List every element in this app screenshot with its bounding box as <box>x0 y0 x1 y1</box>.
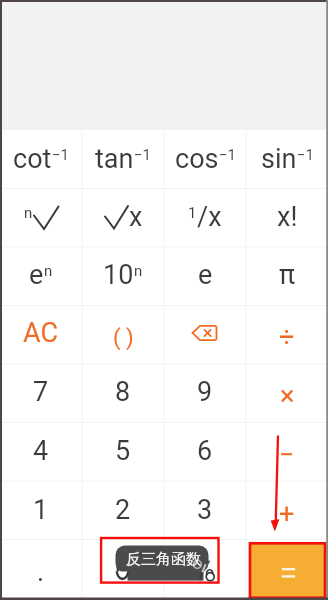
staticText: x! <box>277 201 298 233</box>
staticText: 10 <box>103 259 134 291</box>
button[interactable]: n <box>0 188 82 246</box>
staticText: −1 <box>219 146 236 164</box>
staticText: AC <box>23 317 59 349</box>
staticText: 5 <box>115 435 131 467</box>
staticText: tan <box>95 143 134 175</box>
button[interactable]: 2 <box>82 480 164 539</box>
button[interactable]: 4 <box>0 421 82 480</box>
staticText: 1 <box>33 494 49 526</box>
button[interactable] <box>246 539 328 598</box>
button[interactable]: sin <box>246 130 328 188</box>
staticText: π <box>279 259 296 291</box>
staticText: n <box>24 204 33 222</box>
staticText: 0 <box>115 553 131 585</box>
staticText: x <box>129 201 143 233</box>
button[interactable]: 1 <box>0 480 82 539</box>
staticText: 9 <box>197 376 213 408</box>
button[interactable]: π <box>246 246 328 304</box>
button[interactable]: 9 <box>164 362 246 421</box>
staticText: e <box>198 259 213 291</box>
staticText: − <box>279 439 295 471</box>
staticText: −1 <box>52 146 69 164</box>
button[interactable]: 8 <box>82 362 164 421</box>
staticText: % <box>195 553 215 585</box>
staticText: sin <box>261 143 297 175</box>
button[interactable]: e <box>0 246 82 304</box>
staticText: 6 <box>197 435 213 467</box>
button[interactable]: × <box>246 362 328 421</box>
button[interactable]: % <box>164 539 246 598</box>
button[interactable]: − <box>246 421 328 480</box>
staticText: −1 <box>134 146 151 164</box>
staticText: 3 <box>197 494 213 526</box>
staticText: 2 <box>115 494 131 526</box>
button[interactable]: x <box>82 188 164 246</box>
button[interactable]: + <box>246 480 328 539</box>
button[interactable]: 5 <box>82 421 164 480</box>
button[interactable]: 10 <box>82 246 164 304</box>
staticText: ( ) <box>113 325 134 351</box>
button[interactable]: tan <box>82 130 164 188</box>
button[interactable]: 1 <box>164 188 246 246</box>
staticText: e <box>29 259 44 291</box>
staticText: −1 <box>297 146 314 164</box>
button[interactable]: e <box>164 246 246 304</box>
button[interactable]: . <box>0 539 82 598</box>
staticText: cos <box>175 143 219 175</box>
staticText: 8 <box>115 376 131 408</box>
staticText: cot <box>13 143 52 175</box>
staticText: ÷ <box>279 321 295 353</box>
button[interactable]: 7 <box>0 362 82 421</box>
staticText: + <box>279 498 295 530</box>
button[interactable]: ÷ <box>246 304 328 362</box>
button[interactable] <box>164 304 246 362</box>
staticText: 1 <box>188 204 197 222</box>
button[interactable]: 0 <box>82 539 164 598</box>
staticText: /x <box>197 201 222 233</box>
staticText: 4 <box>33 435 49 467</box>
button[interactable] <box>249 543 328 598</box>
button[interactable]: 6 <box>164 421 246 480</box>
button[interactable]: AC <box>0 304 82 362</box>
button[interactable]: ( ) <box>82 304 164 362</box>
staticText: × <box>280 380 295 412</box>
button[interactable]: cos <box>164 130 246 188</box>
staticText: n <box>44 262 53 280</box>
staticText: . <box>37 556 45 588</box>
staticText: n <box>134 262 143 280</box>
staticText: 反三角函数 <box>126 550 201 569</box>
staticText: 7 <box>33 376 49 408</box>
button[interactable]: x! <box>246 188 328 246</box>
button[interactable]: 3 <box>164 480 246 539</box>
button[interactable]: cot <box>0 130 82 188</box>
